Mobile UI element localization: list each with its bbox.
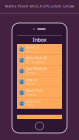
staticText: MAKE YOUR MOCKUPS LOOK GREAT	[4, 3, 74, 9]
button[interactable]: Bernie B.	[17, 44, 62, 55]
staticText: Hello	[26, 104, 34, 107]
staticText: Invoice	[26, 93, 36, 96]
staticText: Tom Whitfield	[26, 67, 47, 71]
staticText: Lena Cruz	[26, 100, 40, 103]
staticText: Bernie B.	[26, 46, 40, 49]
button[interactable]: Alicia Hayes M.	[17, 55, 62, 66]
staticText: Re: shipping	[26, 61, 45, 64]
staticText: Maya Ito	[26, 78, 38, 82]
staticText: Morning	[26, 50, 38, 53]
button[interactable]: Tom Whitfield	[17, 66, 62, 76]
staticText: Inbox	[32, 36, 46, 43]
staticText: Owen Pratt	[26, 89, 42, 92]
button[interactable]: Maya Ito	[17, 76, 62, 87]
staticText: Lunch?	[26, 82, 35, 86]
button[interactable]: Owen Pratt	[17, 87, 62, 98]
button[interactable]: Inbox	[17, 35, 62, 44]
staticText: Alicia Hayes M.	[26, 56, 47, 60]
button[interactable]: Lena Cruz	[17, 98, 62, 109]
staticText: Design	[26, 71, 36, 75]
